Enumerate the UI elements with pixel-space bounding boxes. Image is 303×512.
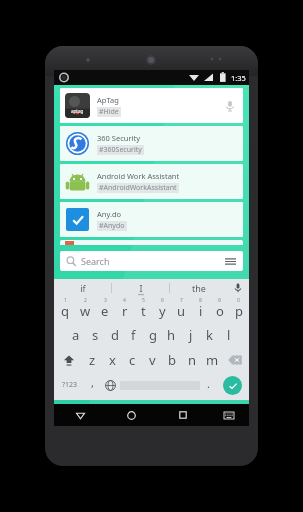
- button[interactable]: 7: [172, 296, 191, 322]
- staticText: t: [141, 302, 146, 320]
- button[interactable]: b: [162, 347, 182, 372]
- staticText: n: [188, 351, 197, 369]
- staticText: u: [177, 302, 186, 320]
- button[interactable]: Voice search: [222, 98, 238, 114]
- staticText: r: [122, 302, 128, 320]
- button[interactable]: aptag: [60, 88, 243, 123]
- button[interactable]: v: [142, 347, 162, 372]
- button[interactable]: s: [86, 322, 105, 347]
- staticText: #AndroidWorkAssistant: [99, 183, 177, 193]
- staticText: 0: [237, 297, 240, 304]
- staticText: a: [72, 326, 80, 344]
- button[interactable]: ?123: [55, 372, 84, 398]
- button[interactable]: I: [112, 279, 169, 296]
- staticText: #Hide: [99, 107, 119, 117]
- staticText: s: [92, 326, 99, 344]
- button[interactable]: g: [143, 322, 162, 347]
- staticText: if: [80, 282, 86, 294]
- button[interactable]: n: [182, 347, 202, 372]
- button[interactable]: 6: [153, 296, 172, 322]
- button[interactable]: f: [124, 322, 143, 347]
- staticText: ,: [91, 375, 94, 390]
- button[interactable]: c: [122, 347, 142, 372]
- button[interactable]: 360 Security: [60, 126, 243, 161]
- staticText: k: [206, 326, 213, 344]
- staticText: w: [80, 302, 91, 320]
- staticText: d: [111, 326, 119, 344]
- staticText: m: [206, 351, 219, 369]
- button[interactable]: Any.do: [60, 202, 243, 237]
- button[interactable]: d: [105, 322, 124, 347]
- button[interactable]: Menu: [223, 254, 237, 268]
- button[interactable]: Enter: [223, 376, 242, 395]
- button[interactable]: Backspace: [222, 347, 248, 372]
- button[interactable]: j: [181, 322, 200, 347]
- button[interactable]: Keyboard: [208, 404, 249, 426]
- button[interactable]: k: [200, 322, 219, 347]
- button[interactable]: Shift: [55, 347, 82, 372]
- button[interactable]: Recents: [157, 404, 208, 426]
- staticText: 6: [161, 297, 164, 304]
- staticText: v: [149, 351, 156, 369]
- staticText: z: [89, 351, 96, 369]
- button[interactable]: 2: [75, 296, 95, 322]
- staticText: 9: [218, 297, 221, 304]
- staticText: #Anydo: [99, 221, 125, 231]
- button[interactable]: .: [200, 372, 217, 398]
- staticText: 3: [104, 297, 107, 304]
- button[interactable]: 9: [210, 296, 229, 322]
- button[interactable]: m: [202, 347, 222, 372]
- staticText: h: [167, 326, 176, 344]
- staticText: x: [109, 351, 116, 369]
- button[interactable]: x: [102, 347, 122, 372]
- button[interactable]: 8: [191, 296, 210, 322]
- staticText: l: [227, 326, 231, 344]
- staticText: c: [129, 351, 136, 369]
- staticText: g: [149, 326, 157, 344]
- button[interactable]: a: [66, 322, 86, 347]
- staticText: p: [235, 302, 243, 320]
- button[interactable]: 5: [134, 296, 153, 322]
- button[interactable]: if: [54, 279, 111, 296]
- staticText: 8: [199, 297, 202, 304]
- button[interactable]: 3: [95, 296, 115, 322]
- staticText: 7: [180, 297, 183, 304]
- staticText: j: [189, 326, 193, 344]
- button[interactable]: 4: [115, 296, 134, 322]
- button[interactable]: Home: [106, 404, 157, 426]
- staticText: ApTag: [97, 95, 119, 105]
- button[interactable]: z: [82, 347, 102, 372]
- staticText: o: [216, 302, 224, 320]
- staticText: the: [192, 282, 206, 294]
- staticText: Android Work Assistant: [97, 171, 180, 181]
- button[interactable]: h: [162, 322, 181, 347]
- staticText: b: [168, 351, 176, 369]
- button[interactable]: Voice input: [227, 279, 249, 296]
- button[interactable]: the: [170, 279, 227, 296]
- staticText: 2: [84, 297, 87, 304]
- staticText: 4: [123, 297, 126, 304]
- staticText: i: [199, 302, 203, 320]
- staticText: #360Security: [99, 145, 142, 155]
- button[interactable]: 0: [229, 296, 248, 322]
- staticText: .: [207, 376, 210, 391]
- staticText: y: [159, 302, 166, 320]
- button[interactable]: [60, 240, 243, 245]
- staticText: ?123: [62, 380, 78, 390]
- staticText: Search: [81, 255, 110, 267]
- staticText: q: [61, 302, 69, 320]
- button[interactable]: ,: [84, 372, 101, 398]
- button[interactable]: Back: [54, 404, 106, 426]
- staticText: I: [139, 282, 143, 294]
- staticText: f: [131, 326, 136, 344]
- button[interactable]: Search: [60, 251, 243, 271]
- button[interactable]: Android Work Assistant: [60, 164, 243, 199]
- staticText: e: [101, 302, 109, 320]
- staticText: aptag: [71, 108, 84, 114]
- button[interactable]: 1: [55, 296, 75, 322]
- button[interactable]: l: [219, 322, 238, 347]
- staticText: 360 Security: [97, 133, 140, 143]
- button[interactable]: Change language: [101, 372, 120, 398]
- staticText: 1:35: [231, 73, 246, 83]
